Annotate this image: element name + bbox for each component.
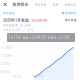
button[interactable]: 本月收益 xyxy=(3,11,15,15)
staticText: 11,000 xyxy=(1,46,12,50)
button[interactable]: 添加对比 xyxy=(62,11,77,15)
staticText: 1月10日 xyxy=(32,74,44,78)
staticText: 收益对比 xyxy=(65,3,77,6)
staticText: 历史收益 xyxy=(35,3,47,6)
button[interactable]: 指标 xyxy=(53,3,59,6)
staticText: 10,504.00 xyxy=(29,17,47,23)
staticText: 9,000 xyxy=(1,62,10,66)
staticText: 累计收益 xyxy=(65,18,77,22)
staticText: 本月收益率 +4.26% xyxy=(3,24,30,27)
staticText: 10,000 xyxy=(1,54,12,58)
staticText: 本月收益 xyxy=(3,11,15,15)
button[interactable]: 收益对比 xyxy=(65,3,80,6)
staticText: 1月2日 xyxy=(12,74,22,78)
staticText: 添加对比 xyxy=(65,11,77,15)
staticText: 2025年1月收益 xyxy=(3,17,29,23)
button[interactable]: Close xyxy=(0,0,13,9)
staticText: 指标 xyxy=(53,3,59,6)
staticText: 8,000 xyxy=(1,70,10,74)
staticText: 1月15日 收益 +3,240.00 收益率 +2.16% xyxy=(9,36,69,39)
button[interactable]: 历史收益 xyxy=(35,3,47,6)
staticText: 投资组合 xyxy=(13,2,29,7)
staticText: 同期沪深300 +1.82% xyxy=(3,28,33,32)
